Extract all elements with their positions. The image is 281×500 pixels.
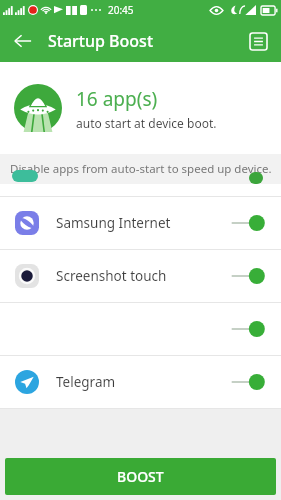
button[interactable]: Toggle auto-start [231,266,265,286]
button[interactable]: Menu [243,26,273,56]
staticText: Samsung Internet [56,214,171,232]
staticText: Startup Boost [48,30,154,52]
button[interactable]: Toggle auto-start [0,303,281,355]
staticText: BOOST [117,467,164,486]
button[interactable]: BOOST [5,458,276,495]
staticText: Telegram [56,373,116,391]
button[interactable]: Toggle auto-start [231,372,265,392]
staticText: auto start at device boot. [76,115,217,131]
staticText: 16 app(s) [76,86,158,112]
staticText: 20:45 [108,3,134,17]
button[interactable]: Telegram [0,356,281,408]
staticText: Disable apps from auto-start to speed up… [10,161,272,177]
staticText: Screenshot touch [56,267,167,285]
button[interactable]: Toggle auto-start [231,319,265,339]
button[interactable]: Toggle auto-start [231,213,265,233]
button[interactable]: Samsung Internet [0,197,281,249]
button[interactable]: Back [8,26,38,56]
button[interactable]: Screenshot touch [0,250,281,302]
